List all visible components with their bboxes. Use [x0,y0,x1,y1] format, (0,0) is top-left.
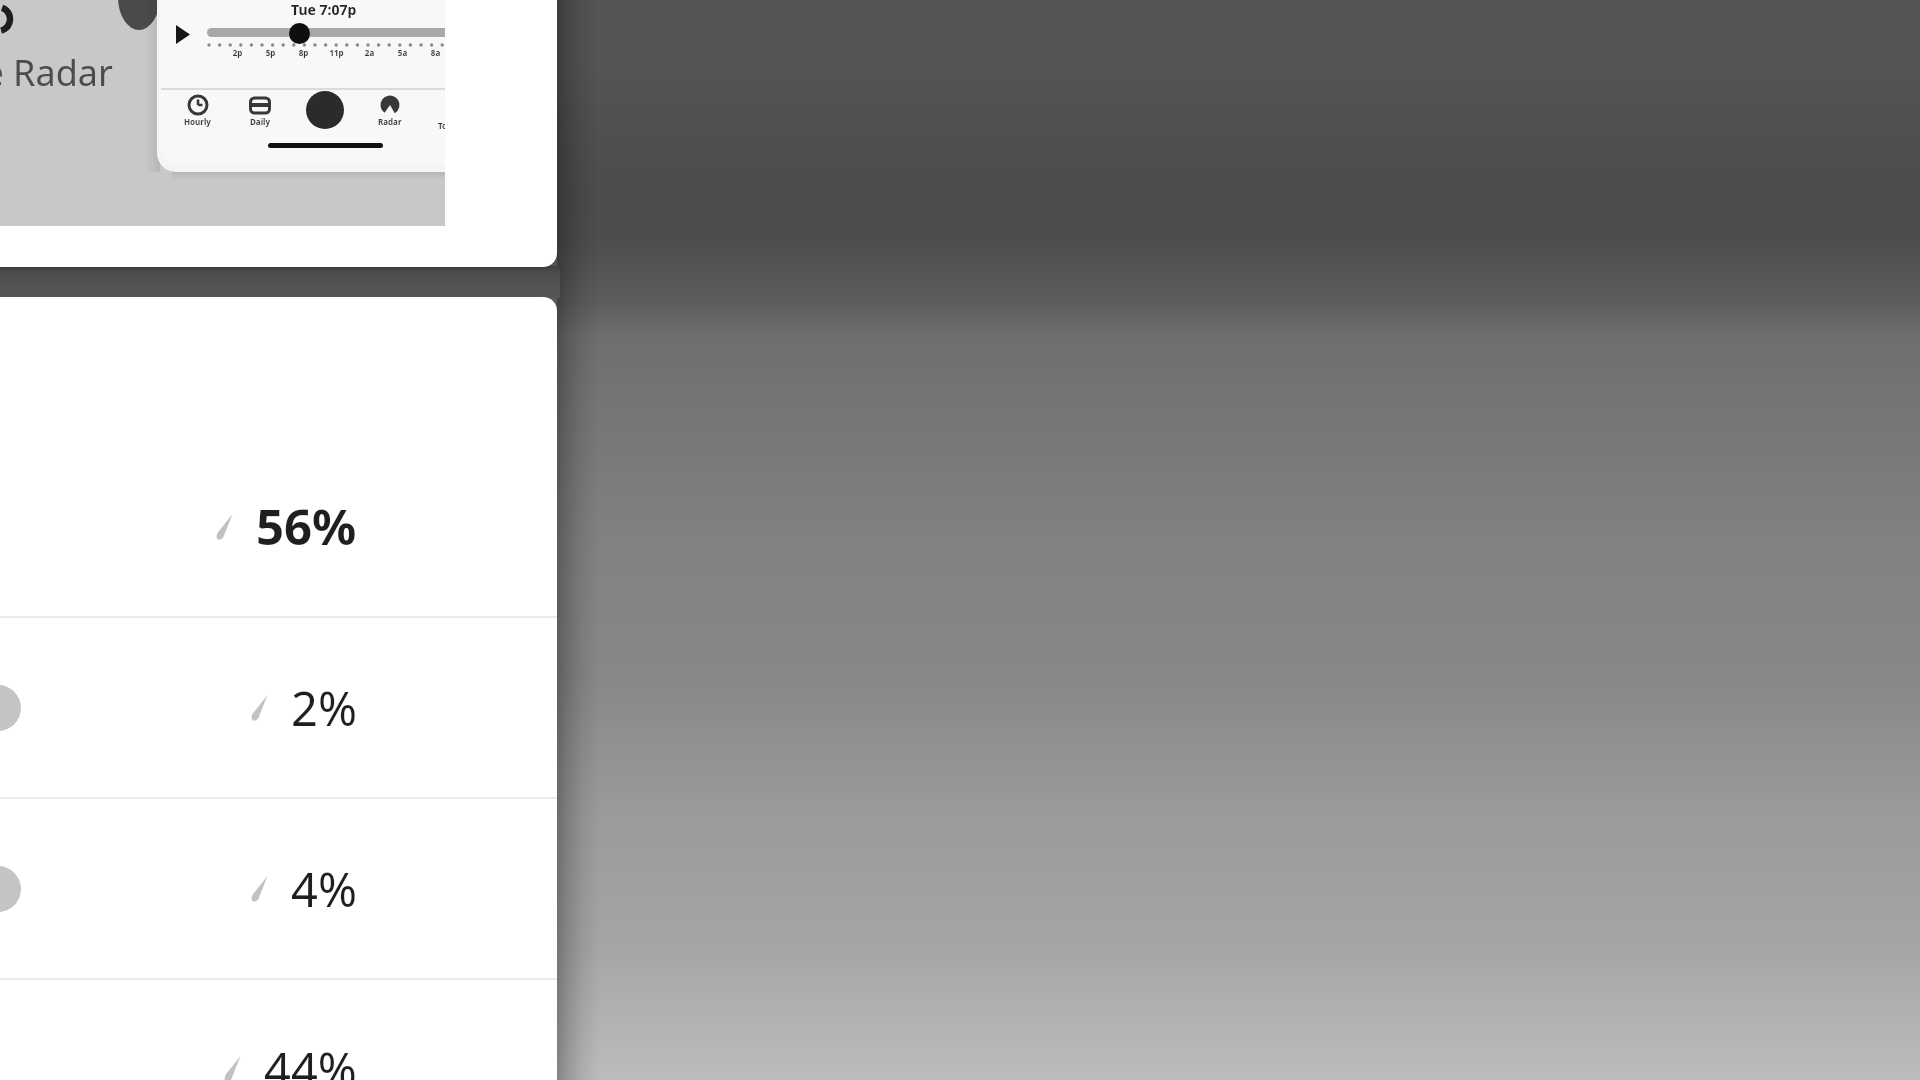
staticText: 4% [291,857,357,921]
staticText: 56% [256,493,357,560]
staticText: 2% [291,676,357,740]
staticText: Hourly [184,116,211,127]
button[interactable]: Hourly [184,94,211,127]
staticText: Tue 7:07p [291,0,357,19]
other: Hourly precipitation [0,297,557,1080]
button[interactable]: Daily [249,94,271,127]
button[interactable]: The Weather Channel [306,91,344,129]
button[interactable]: Now [0,437,557,616]
staticText: 44% [264,1037,357,1080]
staticText: 11p [320,47,353,58]
staticText: Radar [378,116,402,127]
button[interactable]: Radar [378,94,402,127]
button[interactable]: 9 PM [0,618,557,797]
staticText: 2a [353,47,386,58]
staticText: 8a [419,47,445,58]
button[interactable]: Live Radar [0,0,557,267]
button[interactable]: 11 PM [0,980,557,1080]
staticText: 8p [287,47,320,58]
staticText: 5p [254,47,287,58]
staticText: 5a [386,47,419,58]
staticText: Live Radar [0,48,113,97]
staticText: 2p [221,47,254,58]
staticText: Today [438,120,445,131]
button[interactable]: 10 PM [0,799,557,978]
staticText: Daily [250,116,270,127]
